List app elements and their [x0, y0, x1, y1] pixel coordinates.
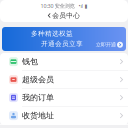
staticText: 我的订单	[22, 93, 54, 102]
staticText: 收货地址	[22, 111, 54, 120]
staticText: 钱包	[22, 57, 38, 66]
button[interactable]: 我的订单	[0, 89, 128, 107]
staticText: 立即开通	[96, 41, 116, 48]
button[interactable]: 收货地址	[0, 107, 128, 125]
staticText: 安全浏览	[54, 3, 74, 9]
button[interactable]: 钱包	[0, 53, 128, 71]
button[interactable]: 超级会员	[0, 71, 128, 89]
staticText: •ıl ▮	[78, 2, 87, 10]
button[interactable]: Back	[48, 13, 51, 18]
staticText: 超级会员	[22, 75, 54, 84]
staticText: 开通会员立享	[41, 40, 83, 48]
staticText: 10:30	[40, 2, 53, 10]
button[interactable]: 立即开通	[96, 41, 123, 48]
staticText: 会员中心	[52, 11, 80, 20]
staticText: 多种精选权益	[31, 29, 73, 38]
